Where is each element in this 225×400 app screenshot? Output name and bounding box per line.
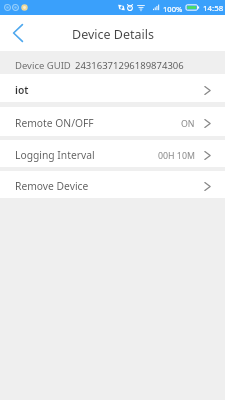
button[interactable]: iot: [0, 74, 225, 102]
staticText: Logging Interval: [15, 148, 95, 162]
button[interactable]: Back: [0, 15, 36, 51]
staticText: Device Details: [72, 26, 154, 43]
staticText: iot: [15, 83, 29, 97]
staticText: Device GUID: [15, 59, 71, 72]
staticText: 14:58: [203, 3, 224, 14]
button[interactable]: Logging Interval: [0, 140, 225, 167]
staticText: 100%: [163, 4, 183, 14]
button[interactable]: Remove Device: [0, 171, 225, 198]
staticText: Remove Device: [15, 179, 89, 193]
staticText: ON: [181, 118, 195, 130]
staticText: 00H 10M: [158, 150, 195, 162]
button[interactable]: Remote ON/OFF: [0, 107, 225, 136]
staticText: 24316371296189874306: [75, 59, 184, 72]
staticText: Remote ON/OFF: [15, 116, 94, 130]
